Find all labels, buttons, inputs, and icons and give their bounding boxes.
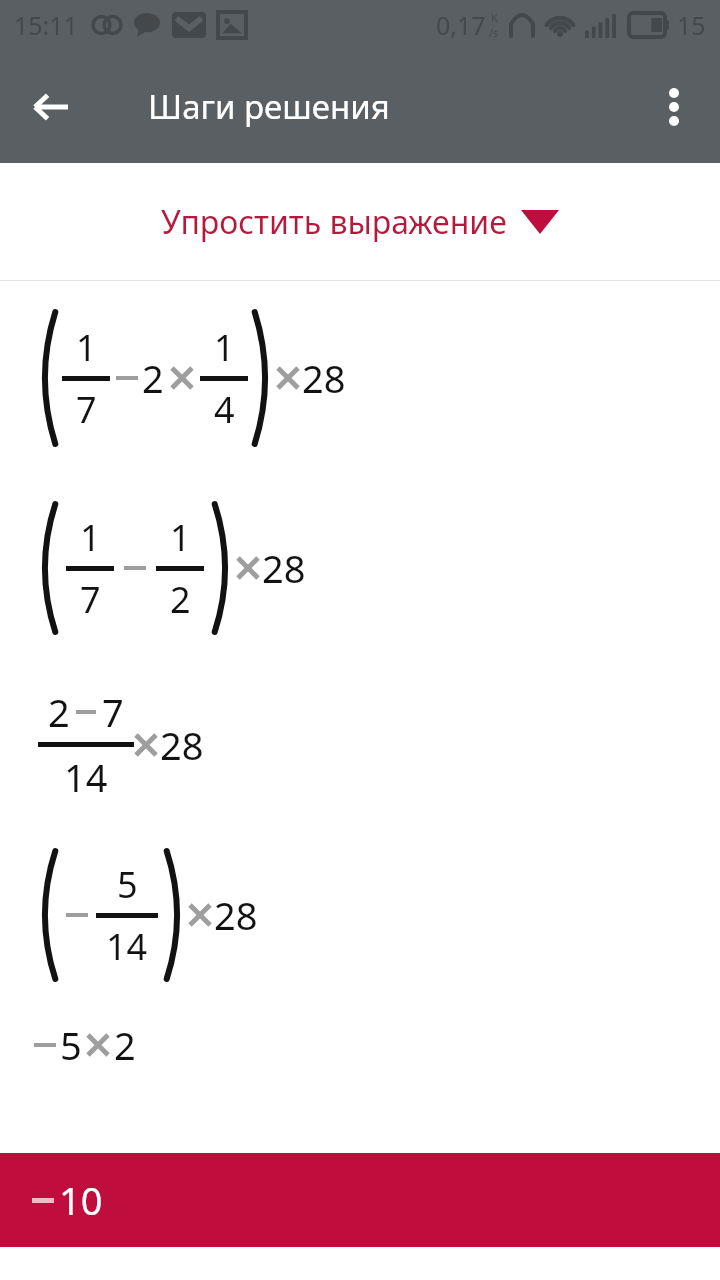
staticText: 2 — [48, 686, 70, 738]
staticText: 2 — [114, 1019, 136, 1071]
staticText: 1 — [76, 323, 97, 372]
staticText: Упростить выражение — [161, 200, 507, 244]
staticText: 1 — [80, 513, 101, 562]
button[interactable]: 1 — [0, 502, 720, 634]
button[interactable]: More options — [646, 79, 702, 135]
staticText: 14 — [106, 922, 148, 971]
button[interactable]: Back — [22, 78, 80, 136]
staticText: 28 — [262, 542, 306, 594]
button[interactable]: 5 — [0, 849, 720, 981]
button[interactable]: 10 — [0, 1153, 720, 1247]
staticText: 2 — [170, 575, 191, 624]
staticText: 7 — [76, 385, 97, 434]
staticText: 7 — [102, 686, 124, 738]
staticText: 14 — [64, 751, 108, 803]
staticText: 28 — [302, 352, 346, 404]
staticText: 1 — [170, 513, 191, 562]
staticText: 5 — [60, 1019, 82, 1071]
staticText: 2 — [142, 352, 164, 404]
button[interactable]: 2 — [0, 686, 720, 803]
staticText: 4 — [214, 385, 235, 434]
button[interactable]: 5 — [0, 1019, 720, 1071]
button[interactable]: Упростить выражение — [0, 163, 720, 280]
staticText: 10 — [59, 1174, 103, 1226]
button[interactable]: 1 — [0, 310, 720, 446]
staticText: /s — [489, 25, 499, 40]
staticText: 28 — [160, 719, 204, 771]
staticText: 5 — [117, 860, 138, 909]
staticText: 7 — [80, 575, 101, 624]
staticText: 0,17 — [436, 8, 486, 42]
staticText: 15:11 — [14, 8, 78, 42]
staticText: K — [491, 10, 498, 25]
staticText: 1 — [214, 323, 235, 372]
staticText: 28 — [214, 889, 258, 941]
staticText: 15 — [677, 8, 706, 42]
staticText: Шаги решения — [148, 84, 390, 129]
